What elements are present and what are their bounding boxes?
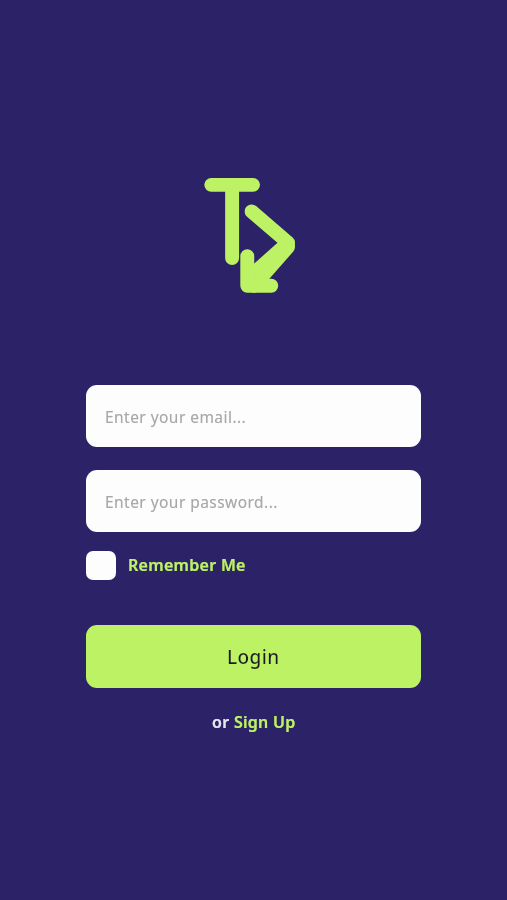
staticText: Login bbox=[227, 644, 280, 670]
button[interactable]: Remember Me bbox=[86, 548, 421, 582]
staticText: Enter your password... bbox=[105, 491, 278, 512]
staticText: Enter your email... bbox=[105, 406, 247, 427]
button[interactable]: Enter your email... bbox=[86, 385, 421, 447]
button[interactable]: or Sign Up bbox=[202, 707, 306, 737]
button[interactable]: Enter your password... bbox=[86, 470, 421, 532]
button[interactable]: Login bbox=[86, 625, 421, 688]
staticText: or Sign Up bbox=[212, 711, 296, 733]
staticText: Remember Me bbox=[128, 554, 246, 576]
